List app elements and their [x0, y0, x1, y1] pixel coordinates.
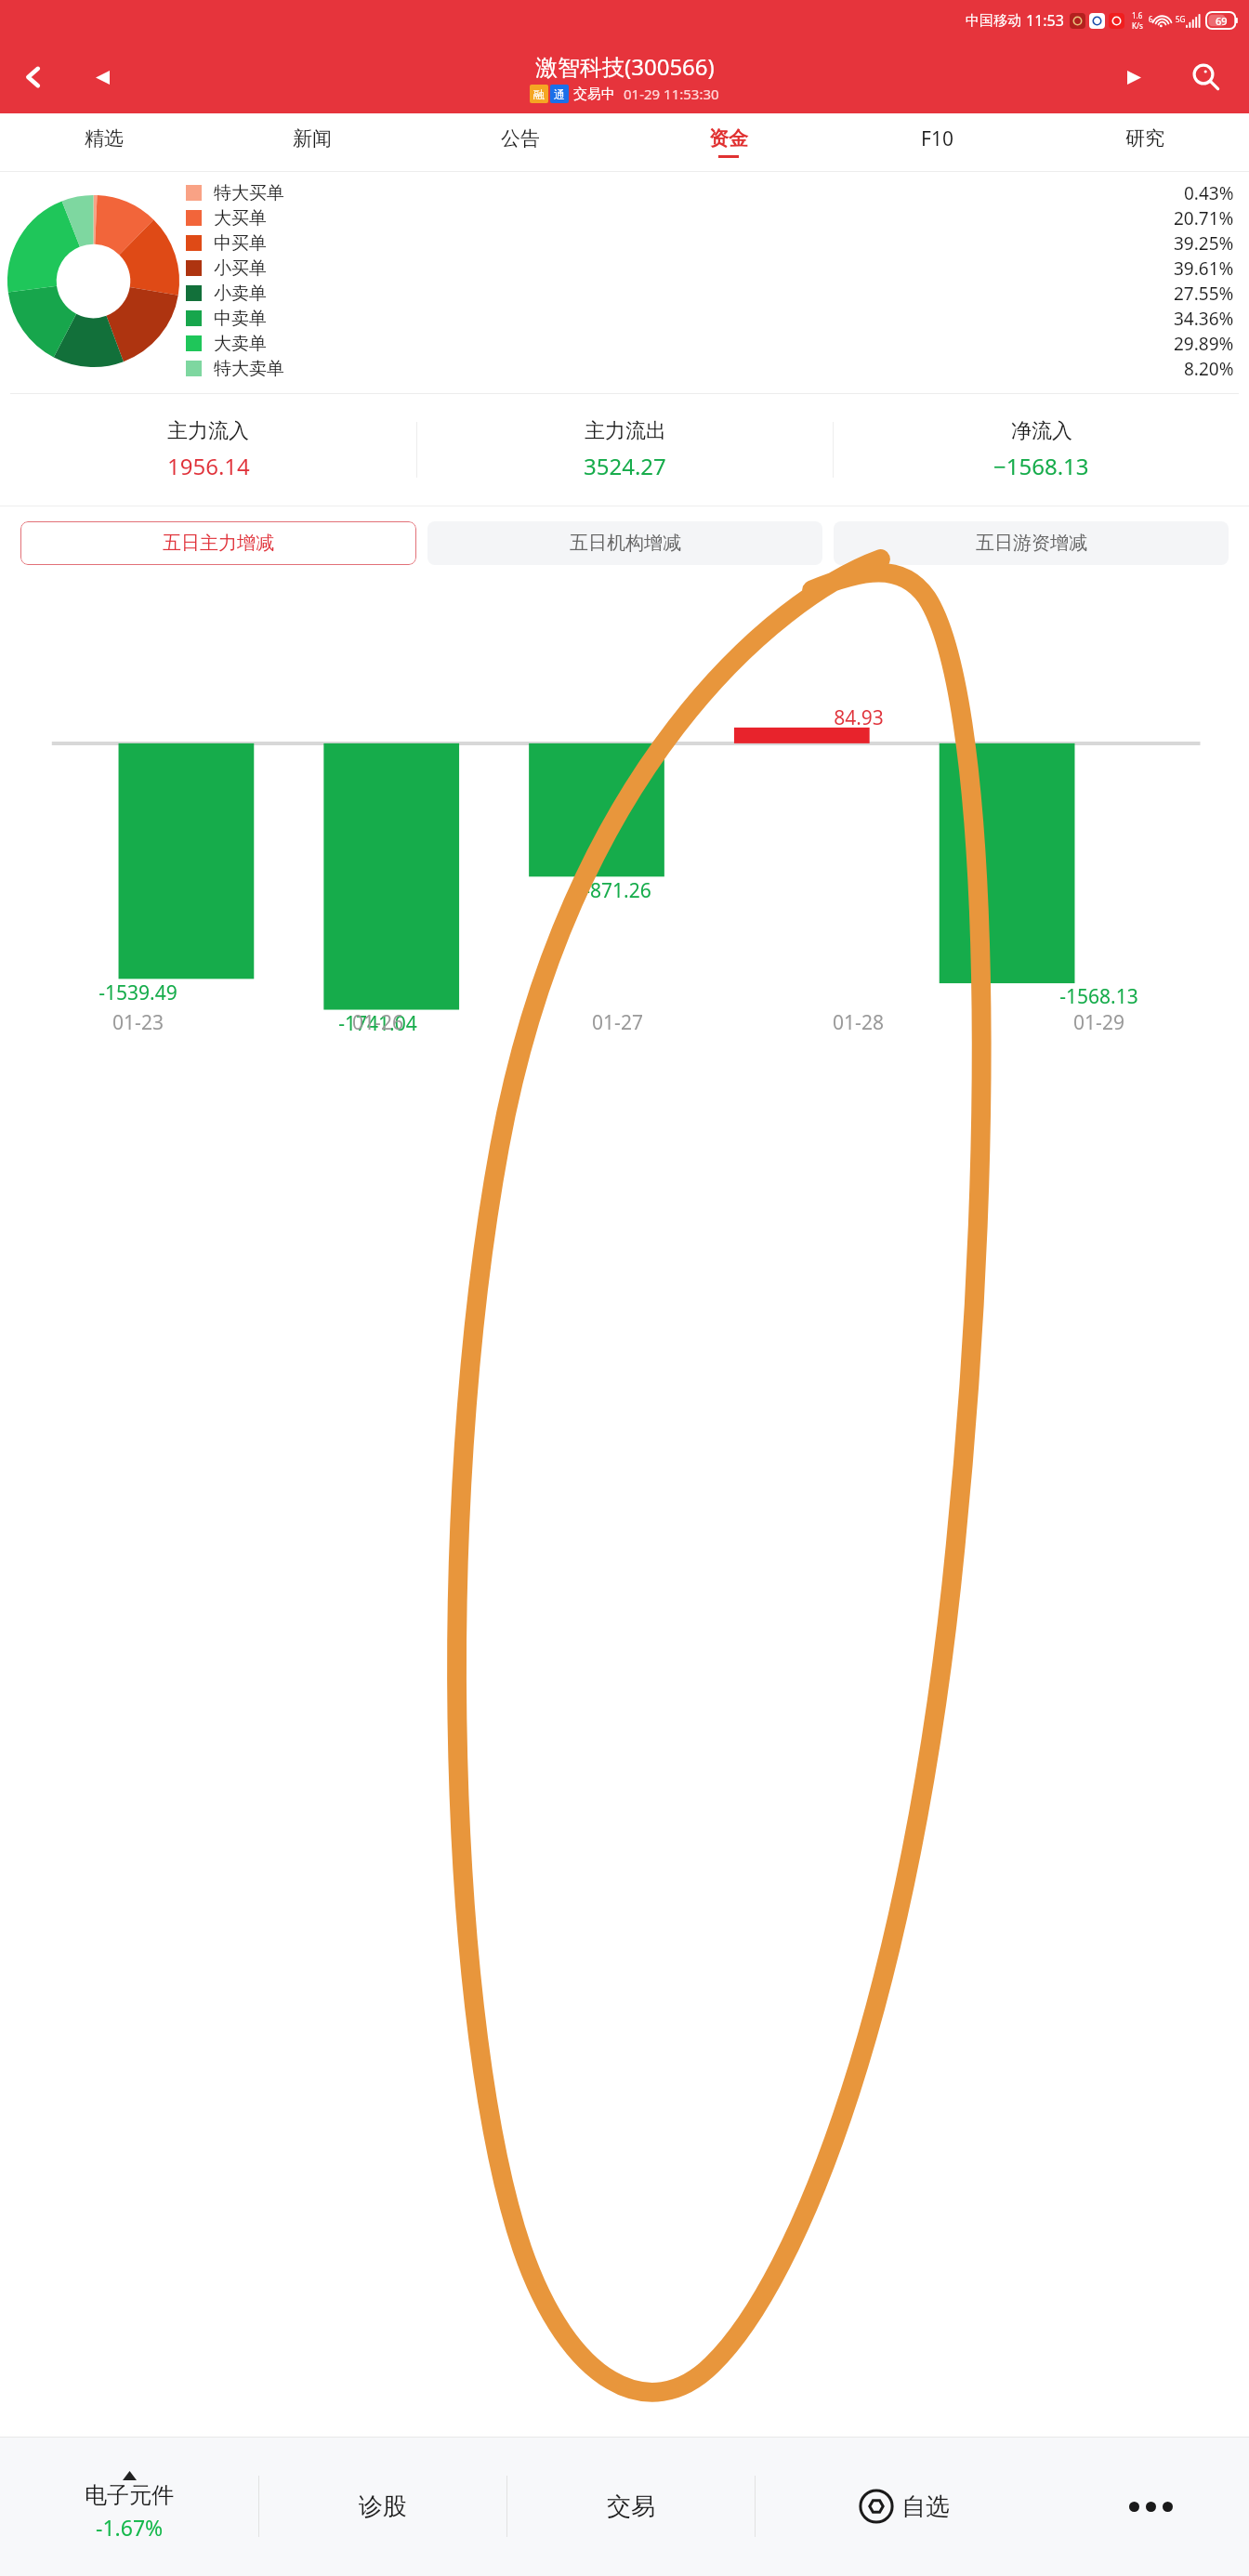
staticText: 8.20%: [1184, 357, 1234, 380]
button[interactable]: 净流入: [834, 418, 1249, 481]
staticText: 69: [1216, 14, 1228, 28]
staticText: 01-28: [833, 1009, 884, 1036]
staticText: 新闻: [293, 126, 332, 151]
staticText: -1568.13: [1059, 983, 1138, 1010]
button[interactable]: 自选: [756, 2437, 1052, 2576]
staticText: K/s: [1132, 20, 1143, 31]
staticText: 主力流出: [585, 418, 666, 444]
staticText: 通: [554, 87, 565, 101]
button[interactable]: 特大买单: [186, 181, 1234, 204]
staticText: 20.71%: [1174, 206, 1234, 230]
button[interactable]: 诊股: [259, 2437, 506, 2576]
staticText: 交易: [607, 2491, 655, 2522]
staticText: 中国移动: [966, 12, 1021, 30]
staticText: 大卖单: [214, 333, 267, 355]
staticText: 5G: [1176, 14, 1186, 24]
staticText: 特大卖单: [214, 358, 284, 380]
button[interactable]: 小卖单: [186, 282, 1234, 305]
staticText: 01-29 11:53:30: [624, 85, 719, 103]
staticText: −1568.13: [993, 451, 1089, 481]
staticText: 84.93: [834, 704, 884, 731]
button[interactable]: 新闻: [208, 113, 416, 171]
button[interactable]: Previous stock: [82, 57, 123, 98]
staticText: F10: [921, 125, 953, 152]
staticText: 交易中: [573, 85, 615, 103]
staticText: 1.6: [1132, 10, 1143, 20]
staticText: 大买单: [214, 207, 267, 230]
staticText: 01-27: [592, 1009, 643, 1036]
staticText: 0.43%: [1184, 181, 1234, 204]
staticText: 主力流入: [167, 418, 249, 444]
button[interactable]: 五日游资增减: [834, 521, 1229, 565]
staticText: 中卖单: [214, 308, 267, 330]
button[interactable]: More options: [1052, 2437, 1249, 2576]
staticText: 11:53: [1026, 10, 1064, 31]
button[interactable]: Next stock: [1113, 57, 1154, 98]
staticText: 01-26: [352, 1009, 403, 1036]
button[interactable]: 公告: [416, 113, 624, 171]
button[interactable]: 中卖单: [186, 307, 1234, 330]
button[interactable]: 特大卖单: [186, 357, 1234, 380]
staticText: -1539.49: [99, 979, 177, 1006]
staticText: 特大买单: [214, 182, 284, 204]
button[interactable]: 五日机构增减: [427, 521, 822, 565]
button[interactable]: 精选: [0, 113, 208, 171]
staticText: -871.26: [584, 877, 651, 904]
staticText: 资金: [709, 126, 748, 151]
staticText: 诊股: [359, 2491, 407, 2522]
button[interactable]: 中买单: [186, 231, 1234, 255]
staticText: 净流入: [1011, 418, 1072, 444]
button[interactable]: 五日主力增减: [20, 521, 416, 565]
staticText: -1.67%: [96, 2513, 164, 2542]
staticText: 自选: [901, 2491, 950, 2522]
button[interactable]: 主力流入: [0, 418, 416, 481]
button[interactable]: 大买单: [186, 206, 1234, 230]
staticText: 27.55%: [1174, 282, 1234, 305]
staticText: 五日主力增减: [163, 532, 274, 555]
staticText: 1956.14: [167, 451, 250, 481]
staticText: 39.61%: [1174, 256, 1234, 280]
staticText: 39.25%: [1174, 231, 1234, 255]
staticText: 研究: [1125, 126, 1164, 151]
staticText: 激智科技(300566): [535, 51, 715, 82]
button[interactable]: 电子元件: [0, 2437, 258, 2576]
button[interactable]: Back: [9, 53, 58, 101]
button[interactable]: F10: [833, 113, 1041, 171]
button[interactable]: 主力流出: [417, 418, 833, 481]
staticText: 精选: [85, 126, 124, 151]
staticText: 五日机构增减: [570, 532, 681, 555]
staticText: 3524.27: [584, 451, 666, 481]
staticText: 01-23: [112, 1009, 164, 1036]
staticText: 小卖单: [214, 283, 267, 305]
button[interactable]: 小买单: [186, 256, 1234, 280]
button[interactable]: 研究: [1041, 113, 1249, 171]
button[interactable]: 资金: [624, 113, 833, 171]
staticText: 中买单: [214, 232, 267, 255]
staticText: -1741.04: [338, 1010, 417, 1037]
staticText: 29.89%: [1174, 332, 1234, 355]
button[interactable]: Search: [1180, 51, 1232, 103]
staticText: 小买单: [214, 257, 267, 280]
staticText: 融: [533, 87, 545, 101]
button[interactable]: 交易: [507, 2437, 755, 2576]
staticText: 电子元件: [85, 2481, 174, 2509]
staticText: 公告: [501, 126, 540, 151]
staticText: 34.36%: [1174, 307, 1234, 330]
button[interactable]: 大卖单: [186, 332, 1234, 355]
staticText: 6: [1149, 14, 1153, 24]
staticText: 五日游资增减: [976, 532, 1087, 555]
staticText: 01-29: [1073, 1009, 1124, 1036]
